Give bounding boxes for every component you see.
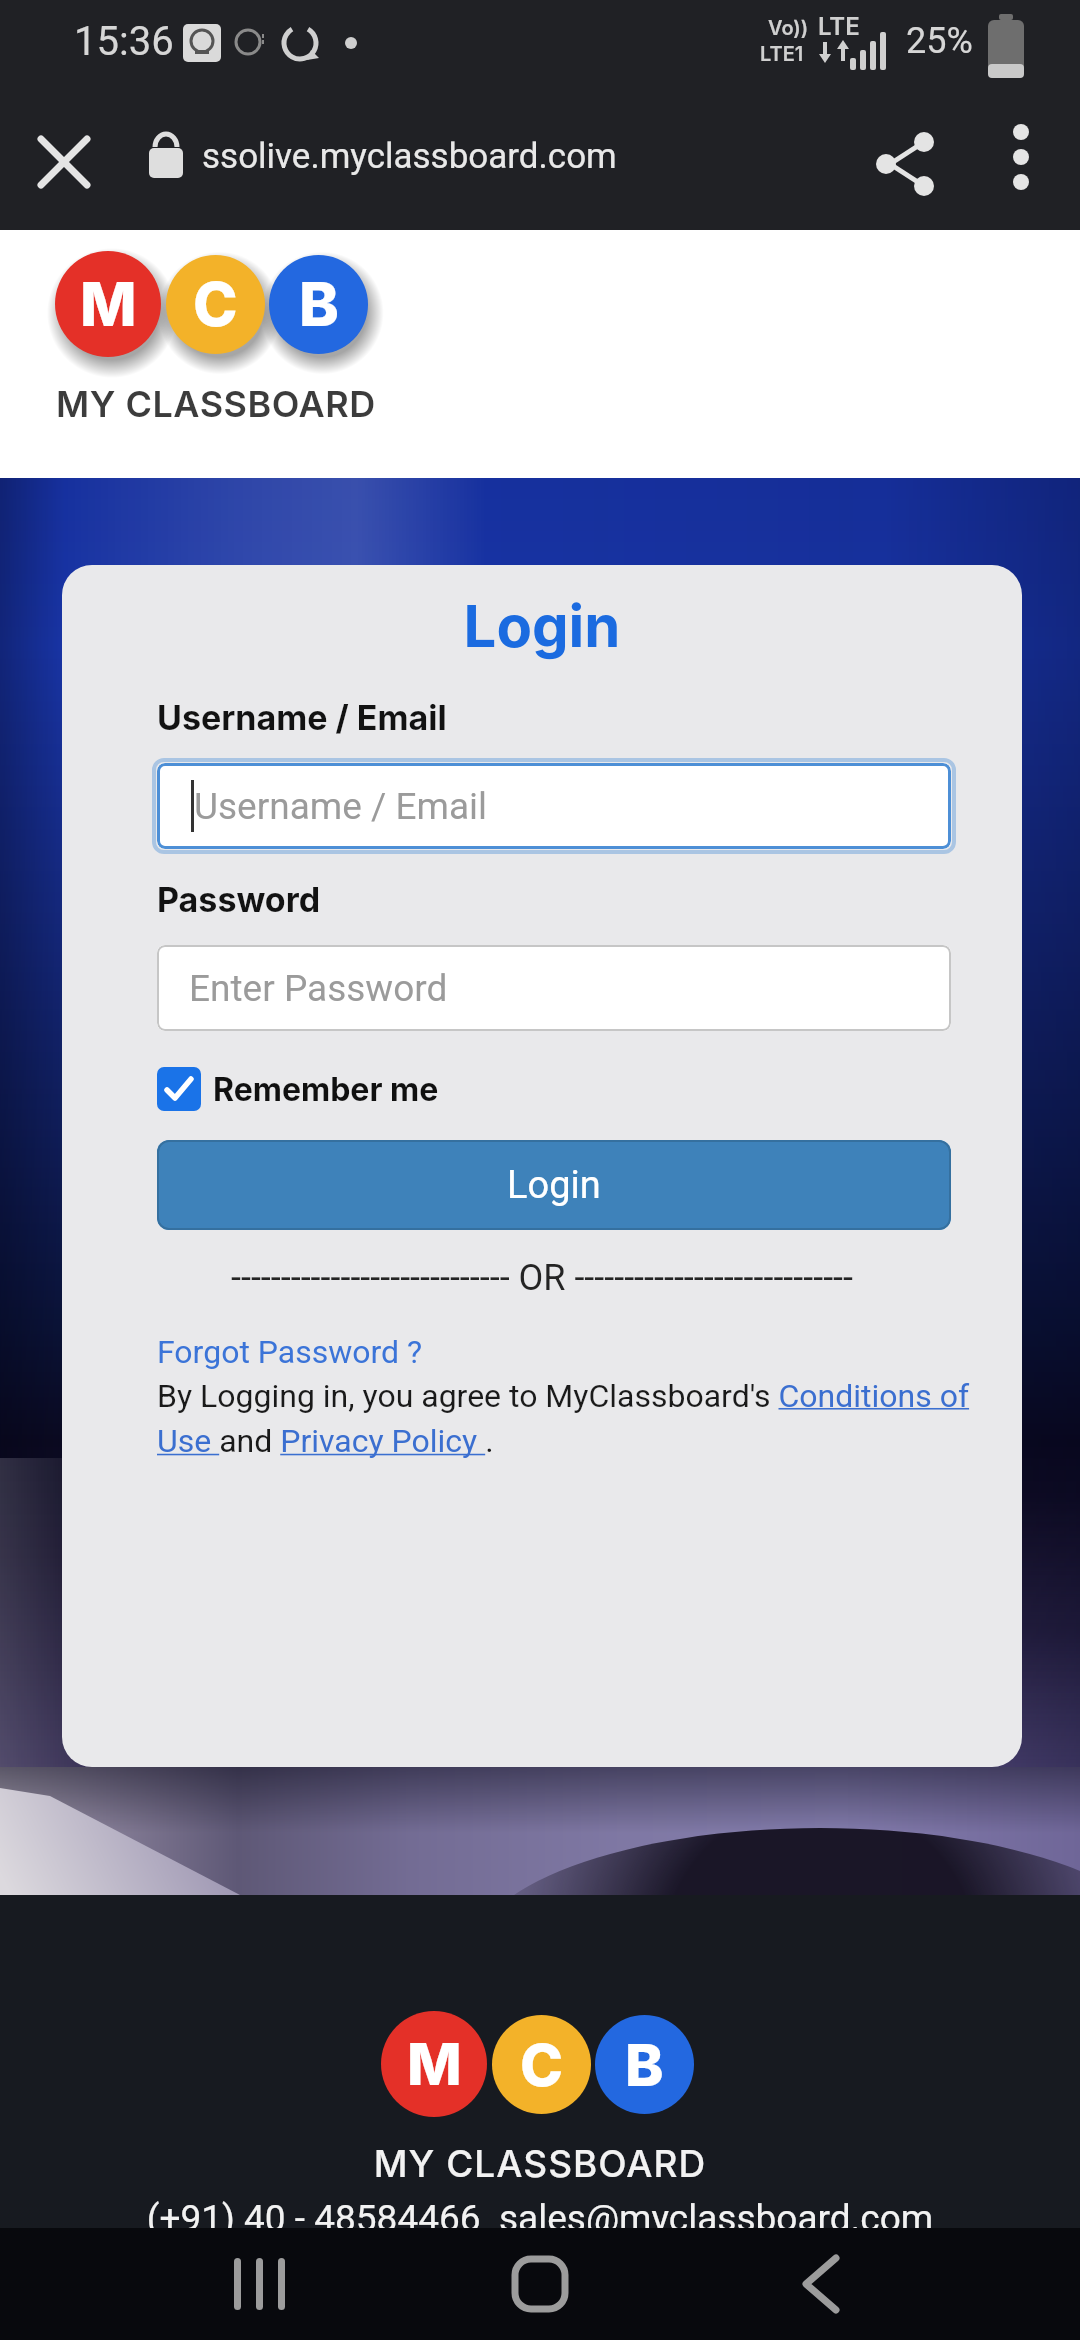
button[interactable]: Remember me	[157, 1067, 439, 1111]
staticText: LTE1	[760, 42, 804, 66]
staticText: Username / Email	[194, 785, 488, 828]
staticText: ssolive.myclassboard.com	[202, 136, 617, 177]
staticText: MY CLASSBOARD	[56, 382, 376, 426]
button[interactable]	[986, 122, 1056, 192]
staticText: By Logging in, you agree to MyClassboard…	[157, 1377, 1017, 1460]
button[interactable]	[770, 2248, 870, 2320]
button[interactable]	[862, 122, 946, 206]
staticText: LTE	[818, 12, 860, 41]
button[interactable]	[210, 2248, 310, 2320]
button[interactable]: Forgot Password ?	[157, 1333, 423, 1371]
staticText: C	[193, 268, 238, 341]
staticText: M	[80, 268, 137, 341]
staticText: M	[407, 2029, 462, 2099]
staticText: Vo))	[768, 16, 809, 40]
staticText: Forgot Password ?	[157, 1333, 423, 1371]
button[interactable]	[490, 2248, 590, 2320]
staticText: Login	[507, 1163, 601, 1208]
staticText: C	[520, 2030, 564, 2100]
staticText: B	[299, 268, 339, 341]
button[interactable]: Enter Password	[157, 945, 951, 1031]
button[interactable]: Login	[157, 1140, 951, 1230]
button[interactable]	[30, 128, 98, 196]
staticText: Login	[62, 591, 1022, 661]
staticText: (+91) 40 - 48584466 sales@myclassboard.c…	[0, 2197, 1080, 2228]
staticText: 25%	[906, 20, 973, 62]
staticText: Username / Email	[157, 697, 447, 738]
button[interactable]: Username / Email	[157, 763, 951, 849]
staticText: MY CLASSBOARD	[0, 2141, 1080, 2186]
staticText: B	[625, 2030, 664, 2100]
staticText: ---------------------------- OR --------…	[62, 1257, 1022, 1299]
staticText: Password	[157, 879, 321, 920]
staticText: Remember me	[213, 1070, 439, 1109]
staticText: 15:36	[74, 18, 174, 65]
staticText: Enter Password	[189, 967, 448, 1010]
